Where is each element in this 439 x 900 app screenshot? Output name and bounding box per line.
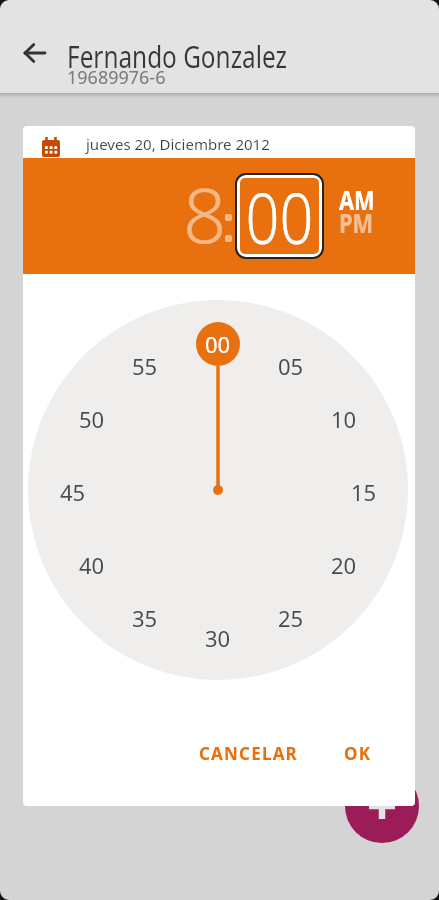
- button[interactable]: [16, 38, 54, 68]
- staticText: 05: [278, 351, 304, 375]
- staticText: 8: [183, 162, 227, 266]
- staticText: 19689976-6: [67, 65, 166, 90]
- button[interactable]: PM: [339, 205, 373, 240]
- staticText: AM: [339, 182, 375, 217]
- staticText: 30: [205, 623, 231, 647]
- button[interactable]: jueves 20, Diciembre 2012: [86, 128, 270, 160]
- staticText: 20: [331, 550, 357, 574]
- staticText: 00: [205, 329, 231, 359]
- staticText: 50: [79, 404, 105, 428]
- staticText: 15: [351, 477, 377, 501]
- staticText: 40: [79, 550, 105, 574]
- staticText: 55: [132, 351, 158, 375]
- button[interactable]: OK: [330, 733, 386, 773]
- button[interactable]: 00: [196, 322, 240, 366]
- staticText: 45: [60, 477, 86, 501]
- staticText: 00: [245, 170, 313, 252]
- button[interactable]: 8: [119, 158, 227, 270]
- staticText: 10: [331, 404, 357, 428]
- button[interactable]: AM: [339, 182, 375, 217]
- staticText: Fernando Gonzalez: [67, 35, 288, 77]
- button[interactable]: CANCELAR: [183, 733, 313, 773]
- staticText: PM: [339, 205, 373, 240]
- staticText: 25: [278, 603, 304, 627]
- button[interactable]: [345, 769, 419, 843]
- staticText: CANCELAR: [199, 742, 298, 765]
- staticText: 35: [132, 603, 158, 627]
- button[interactable]: 00: [237, 175, 322, 257]
- staticText: jueves 20, Diciembre 2012: [86, 134, 270, 154]
- staticText: OK: [344, 742, 372, 765]
